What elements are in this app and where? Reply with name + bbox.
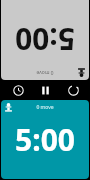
- button[interactable]: Pause: [35, 80, 55, 100]
- staticText: 0 move: [36, 104, 54, 111]
- staticText: 5:00: [1, 119, 89, 160]
- button[interactable]: Reset: [63, 80, 83, 100]
- button[interactable]: 0 move: [1, 100, 89, 179]
- staticText: 5:00: [1, 19, 89, 60]
- button[interactable]: Time settings: [8, 80, 28, 100]
- button[interactable]: 0 move: [1, 0, 89, 80]
- staticText: 0 move: [36, 69, 54, 76]
